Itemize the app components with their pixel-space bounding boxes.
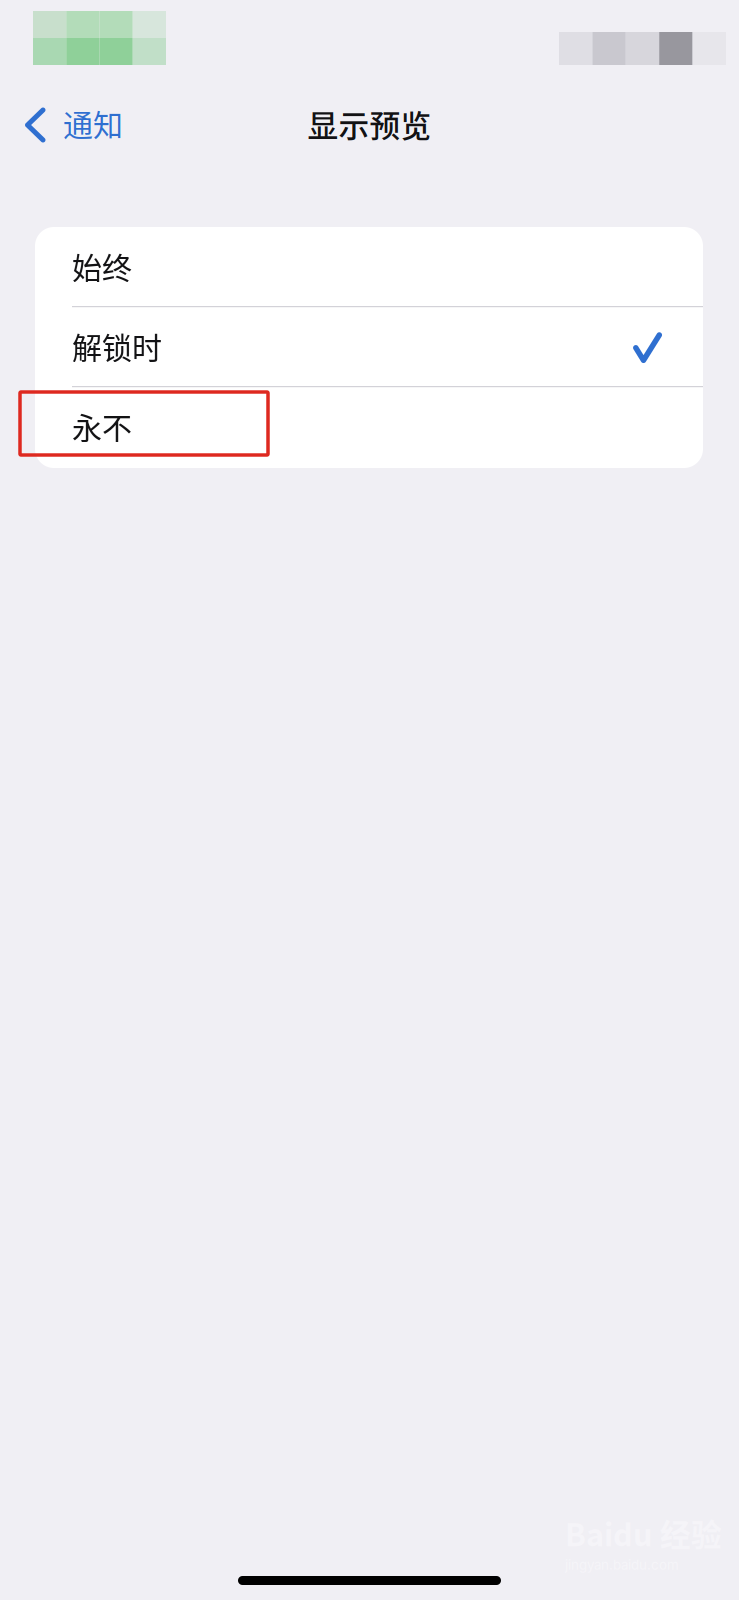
button[interactable]: 解锁时 [35,307,703,387]
staticText: 通知 [63,101,123,145]
button[interactable]: 永不 [35,387,703,467]
button[interactable]: 始终 [35,227,703,307]
button[interactable]: 通知 [0,97,141,153]
staticText: 永不 [72,404,132,448]
staticText: 始终 [72,244,132,288]
staticText: 解锁时 [72,324,162,368]
staticText: 显示预览 [307,102,431,146]
